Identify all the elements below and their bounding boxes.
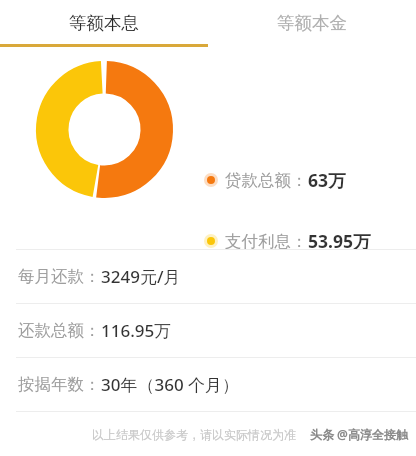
button[interactable]: 每月还款： [0, 250, 416, 303]
staticText: 每月还款： [18, 266, 101, 287]
staticText: 还款总额： [18, 320, 101, 341]
button[interactable]: 按揭年数： [0, 358, 416, 411]
staticText: 等额本金 [277, 12, 347, 34]
staticText: 头条 @高淳全接触 [310, 426, 408, 442]
staticText: 30年（360 个月） [101, 373, 240, 396]
staticText: 以上结果仅供参考，请以实际情况为准 [92, 427, 296, 442]
other: Loan breakdown donut chart [36, 61, 173, 198]
staticText: 53.95万 [308, 229, 371, 253]
staticText: 63万 [308, 168, 346, 192]
staticText: 3249元/月 [101, 265, 181, 288]
staticText: 116.95万 [101, 319, 172, 342]
staticText: 等额本息 [69, 12, 139, 34]
staticText: 贷款总额： [225, 170, 308, 191]
staticText: 按揭年数： [18, 374, 101, 395]
staticText: 支付利息： [225, 231, 308, 252]
button[interactable]: 还款总额： [0, 304, 416, 357]
button[interactable]: 等额本金 [208, 0, 416, 45]
button[interactable]: 等额本息 [0, 0, 208, 45]
